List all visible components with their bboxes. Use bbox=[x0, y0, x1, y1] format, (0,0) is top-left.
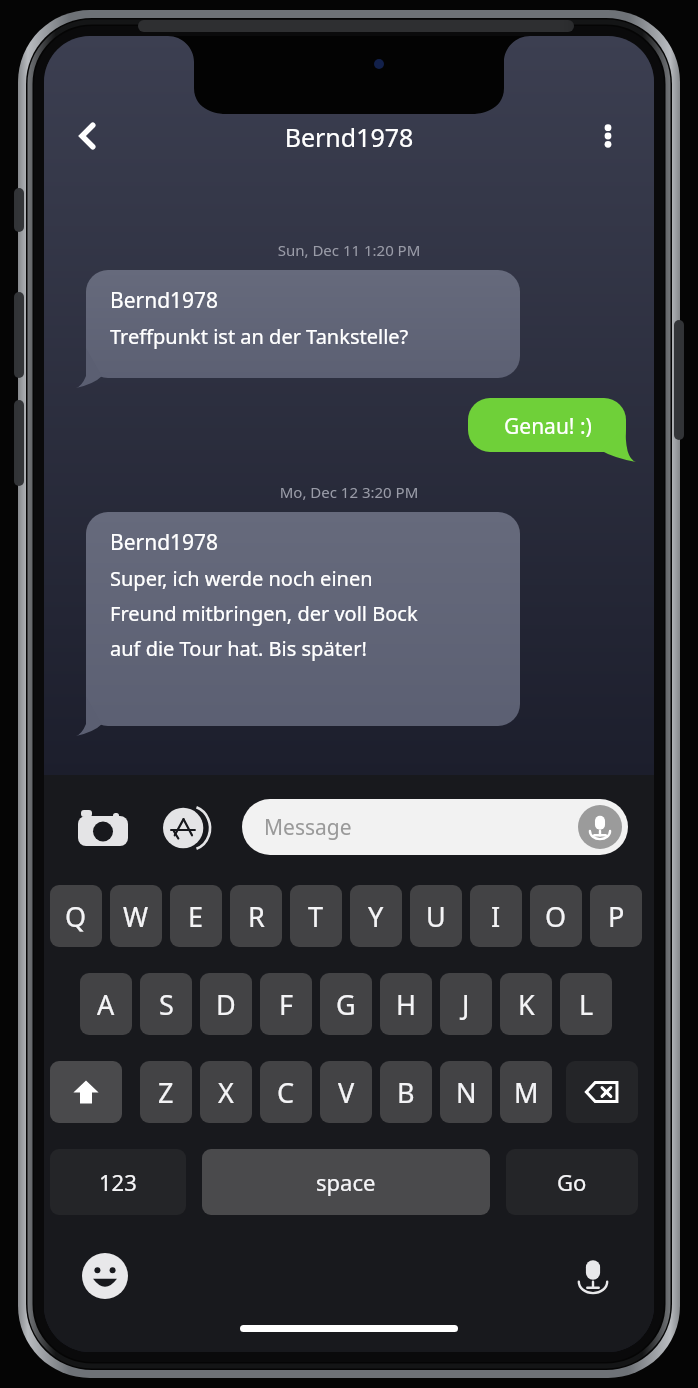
button[interactable]: Y bbox=[350, 885, 402, 947]
button[interactable]: Back bbox=[62, 110, 114, 162]
button[interactable]: O bbox=[530, 885, 582, 947]
button[interactable]: K bbox=[500, 973, 552, 1035]
button[interactable]: I bbox=[470, 885, 522, 947]
staticText: P bbox=[608, 898, 625, 935]
button[interactable]: Bernd1978 bbox=[76, 270, 520, 388]
staticText: Treffpunkt ist an der Tankstelle? bbox=[110, 323, 409, 350]
button[interactable]: L bbox=[560, 973, 612, 1035]
button[interactable]: F bbox=[260, 973, 312, 1035]
button[interactable]: More options bbox=[582, 110, 634, 162]
button[interactable]: Emoji bbox=[74, 1245, 136, 1307]
staticText: W bbox=[123, 898, 149, 935]
staticText: O bbox=[545, 898, 567, 935]
staticText: N bbox=[456, 1074, 477, 1111]
staticText: I bbox=[491, 898, 501, 935]
staticText: Bernd1978 bbox=[110, 528, 219, 557]
staticText: Bernd1978 bbox=[110, 286, 219, 315]
button[interactable]: Bernd1978 bbox=[76, 512, 520, 736]
button[interactable]: J bbox=[440, 973, 492, 1035]
staticText: Super, ich werde noch einen bbox=[110, 565, 373, 592]
staticText: X bbox=[218, 1074, 234, 1111]
button[interactable]: Genau! :) bbox=[468, 398, 636, 462]
staticText: auf die Tour hat. Bis später! bbox=[110, 635, 367, 662]
button[interactable]: S bbox=[140, 973, 192, 1035]
button[interactable]: W bbox=[110, 885, 162, 947]
staticText: U bbox=[426, 898, 446, 935]
button[interactable]: Go bbox=[506, 1149, 638, 1215]
staticText: H bbox=[396, 986, 417, 1023]
button[interactable]: U bbox=[410, 885, 462, 947]
button[interactable]: Message bbox=[242, 799, 628, 855]
staticText: Message bbox=[264, 813, 352, 842]
button[interactable]: E bbox=[170, 885, 222, 947]
staticText: B bbox=[397, 1074, 415, 1111]
staticText: 123 bbox=[99, 1167, 137, 1197]
staticText: J bbox=[462, 986, 470, 1023]
staticText: S bbox=[159, 986, 174, 1023]
staticText: Mo, Dec 12 3:20 PM bbox=[44, 482, 654, 502]
staticText: K bbox=[518, 986, 535, 1023]
staticText: L bbox=[579, 986, 594, 1023]
staticText: T bbox=[308, 898, 324, 935]
staticText: Sun, Dec 11 1:20 PM bbox=[44, 240, 654, 260]
button[interactable]: Voice typing bbox=[562, 1245, 624, 1307]
button[interactable]: A bbox=[80, 973, 132, 1035]
staticText: Bernd1978 bbox=[44, 120, 654, 154]
staticText: Genau! :) bbox=[504, 412, 592, 441]
staticText: E bbox=[188, 898, 204, 935]
staticText: Y bbox=[368, 898, 384, 935]
button[interactable]: R bbox=[230, 885, 282, 947]
button[interactable]: G bbox=[320, 973, 372, 1035]
staticText: Q bbox=[65, 898, 87, 935]
button[interactable]: V bbox=[320, 1061, 372, 1123]
button[interactable]: Apps bbox=[154, 795, 220, 861]
button[interactable]: Backspace bbox=[566, 1061, 638, 1123]
staticText: Freund mitbringen, der voll Bock bbox=[110, 600, 418, 627]
button[interactable]: Voice input bbox=[578, 805, 622, 849]
button[interactable]: H bbox=[380, 973, 432, 1035]
staticText: R bbox=[248, 898, 265, 935]
staticText: Z bbox=[158, 1074, 174, 1111]
button[interactable]: M bbox=[500, 1061, 552, 1123]
button[interactable]: B bbox=[380, 1061, 432, 1123]
button[interactable]: X bbox=[200, 1061, 252, 1123]
staticText: D bbox=[216, 986, 236, 1023]
button[interactable]: C bbox=[260, 1061, 312, 1123]
staticText: C bbox=[277, 1074, 295, 1111]
button[interactable]: T bbox=[290, 885, 342, 947]
button[interactable]: D bbox=[200, 973, 252, 1035]
button[interactable]: 123 bbox=[50, 1149, 186, 1215]
button[interactable]: P bbox=[590, 885, 642, 947]
staticText: M bbox=[514, 1074, 539, 1111]
button[interactable]: Z bbox=[140, 1061, 192, 1123]
button[interactable]: space bbox=[202, 1149, 490, 1215]
staticText: A bbox=[97, 986, 115, 1023]
staticText: G bbox=[336, 986, 356, 1023]
button[interactable]: Shift bbox=[50, 1061, 122, 1123]
staticText: Go bbox=[557, 1167, 587, 1197]
button[interactable]: Q bbox=[50, 885, 102, 947]
button[interactable]: N bbox=[440, 1061, 492, 1123]
staticText: F bbox=[279, 986, 294, 1023]
button[interactable]: Camera bbox=[70, 795, 136, 861]
staticText: space bbox=[316, 1167, 376, 1197]
staticText: V bbox=[338, 1074, 355, 1111]
